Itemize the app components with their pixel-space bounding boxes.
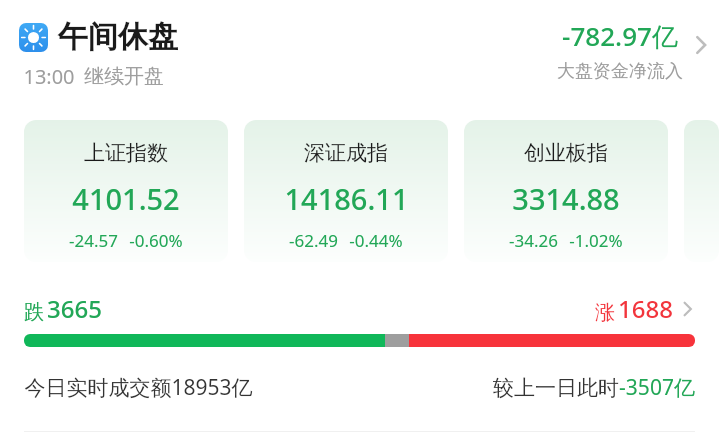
- staticText: 继续开盘: [84, 64, 164, 89]
- other: 涨跌家数详情: [679, 297, 695, 321]
- staticText: -1.02%: [569, 229, 623, 252]
- staticText: 3665: [47, 292, 102, 325]
- staticText: -0.44%: [349, 229, 403, 252]
- other: 查看大盘资金净流入: [691, 30, 709, 60]
- staticText: 1688: [618, 292, 673, 325]
- staticText: 跌: [24, 300, 44, 325]
- button[interactable]: 深证成指: [244, 120, 448, 262]
- staticText: -3507亿: [619, 373, 695, 402]
- staticText: 3314.88: [512, 179, 620, 218]
- staticText: 今日实时成交额18953亿: [24, 373, 253, 402]
- staticText: 涨: [595, 300, 615, 325]
- staticText: 创业板指: [524, 140, 608, 166]
- staticText: -34.26: [509, 229, 558, 252]
- staticText: -62.49: [289, 229, 338, 252]
- button[interactable]: [684, 120, 719, 262]
- button[interactable]: 跌: [24, 292, 695, 325]
- staticText: 上证指数: [84, 140, 168, 166]
- staticText: -782.97亿: [562, 18, 678, 54]
- staticText: 14186.11: [284, 179, 409, 218]
- staticText: 13:00: [23, 63, 75, 90]
- staticText: 较上一日此时: [493, 375, 619, 401]
- button[interactable]: 上证指数: [24, 120, 228, 262]
- button[interactable]: -782.97亿: [557, 18, 709, 83]
- button[interactable]: [24, 334, 695, 347]
- staticText: 大盘资金净流入: [557, 60, 683, 83]
- staticText: -0.60%: [129, 229, 183, 252]
- staticText: 深证成指: [304, 140, 388, 166]
- staticText: -24.57: [69, 229, 118, 252]
- staticText: 午间休盘: [58, 18, 178, 56]
- staticText: 4101.52: [72, 179, 180, 218]
- button[interactable]: 创业板指: [464, 120, 668, 262]
